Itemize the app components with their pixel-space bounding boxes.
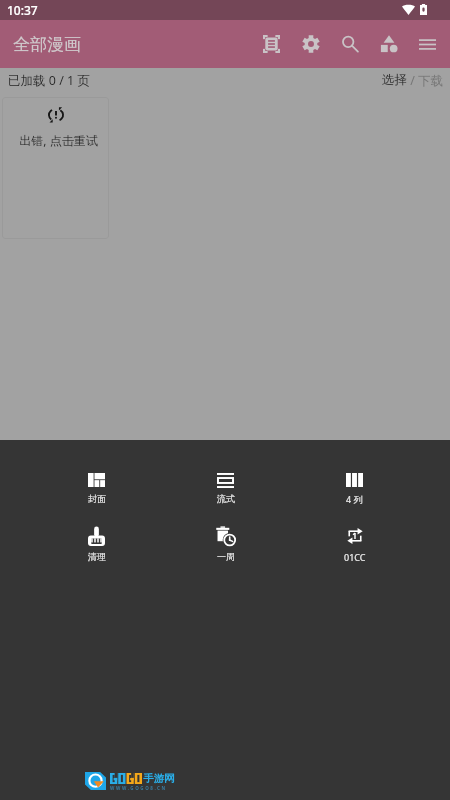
button[interactable]: Menu	[408, 20, 447, 68]
button[interactable]: 选择	[382, 72, 407, 88]
staticText: 手游网	[143, 772, 175, 785]
staticText: 01CC	[344, 551, 366, 563]
button[interactable]: Search	[330, 20, 369, 68]
button[interactable]: 出错, 点击重试	[2, 97, 109, 239]
button[interactable]: 流式	[161, 472, 290, 504]
staticText: WWW.GOGO8.CN	[110, 785, 167, 791]
button[interactable]: Categories	[369, 20, 408, 68]
button[interactable]: 4 列	[290, 472, 419, 505]
button[interactable]: 一周	[161, 526, 290, 562]
button[interactable]: 封面	[32, 472, 161, 504]
staticText: 全部漫画	[13, 34, 81, 55]
staticText: 清理	[88, 551, 106, 562]
button[interactable]: Settings	[291, 20, 330, 68]
staticText: 10:37	[7, 2, 38, 18]
button[interactable]: 01CC	[290, 526, 419, 563]
button[interactable]: 清理	[32, 526, 161, 562]
staticText: 4 列	[346, 493, 363, 505]
button[interactable]: Scan document	[252, 20, 291, 68]
staticText: 一周	[217, 551, 235, 562]
staticText: 流式	[217, 493, 235, 504]
staticText: 出错, 点击重试	[19, 132, 98, 148]
staticText: 已加载 0 / 1 页	[8, 72, 90, 89]
button[interactable]: / 下载	[407, 72, 444, 89]
staticText: 封面	[88, 493, 106, 504]
